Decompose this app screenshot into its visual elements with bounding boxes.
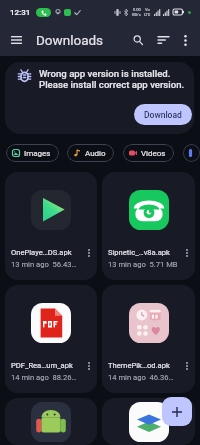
button[interactable]: Download xyxy=(134,104,192,125)
button[interactable]: Videos xyxy=(123,144,174,162)
staticText: 13 min ago 56.43… xyxy=(11,260,77,269)
button[interactable]: More options xyxy=(175,30,195,50)
staticText: 0.00 xyxy=(133,7,141,12)
button[interactable]: Sort xyxy=(152,29,174,51)
button[interactable]: Wrong app version is installed. xyxy=(5,62,194,134)
button[interactable]: Item options xyxy=(181,360,192,371)
staticText: 12:31 xyxy=(10,8,31,17)
staticText: PDF_Rea…um_apk xyxy=(11,361,83,370)
staticText: Audio xyxy=(85,149,106,158)
button[interactable]: Item options xyxy=(181,247,192,258)
button[interactable]: Item options xyxy=(102,398,195,445)
staticText: Vo xyxy=(145,7,150,12)
button[interactable]: PDF_Rea…um_apk xyxy=(5,285,97,393)
staticText: Wrong app version is installed. xyxy=(39,68,171,79)
button[interactable]: Sipnetic_…v8a.apk xyxy=(102,172,195,280)
button[interactable]: Search xyxy=(127,29,149,51)
staticText: 14 min ago 88.26… xyxy=(11,373,77,382)
button[interactable]: Item options xyxy=(83,360,94,371)
button[interactable]: Add download xyxy=(162,397,192,426)
staticText: 13 min ago 5.71 MB xyxy=(108,260,178,269)
staticText: Images xyxy=(24,149,51,158)
staticText: Videos xyxy=(141,149,166,158)
button[interactable]: Item options xyxy=(83,247,94,258)
staticText: LTE xyxy=(144,12,151,17)
staticText: 14 min ago 46.36… xyxy=(108,373,174,382)
staticText: Download xyxy=(144,110,182,120)
button[interactable]: OnePlaye…DS.apk xyxy=(5,172,97,280)
button[interactable]: ThemePik…od.apk xyxy=(102,285,195,393)
staticText: Please install correct app version. xyxy=(39,79,185,90)
button[interactable]: Images xyxy=(6,144,59,162)
staticText: KB/s xyxy=(132,12,141,17)
staticText: ThemePik…od.apk xyxy=(108,361,181,370)
staticText: Downloads xyxy=(36,32,104,48)
staticText: Sipnetic_…v8a.apk xyxy=(108,248,181,257)
button[interactable]: D xyxy=(183,144,200,162)
button[interactable]: Audio xyxy=(67,144,114,162)
button[interactable]: Item options xyxy=(5,398,97,445)
button[interactable]: Navigation menu xyxy=(3,27,29,53)
staticText: OnePlaye…DS.apk xyxy=(11,248,83,257)
